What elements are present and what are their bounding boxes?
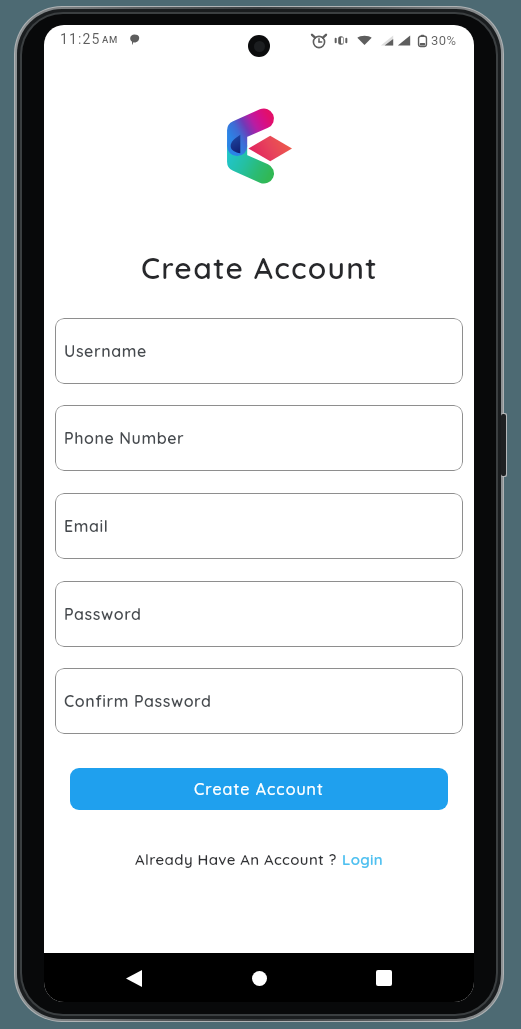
staticText: Phone Number	[64, 428, 185, 448]
button[interactable]: Password	[55, 581, 463, 647]
staticText: Already Have An Account ?	[135, 850, 342, 869]
button[interactable]: Recent apps	[364, 958, 404, 998]
staticText: Email	[64, 516, 109, 536]
staticText: AM	[102, 34, 118, 45]
staticText: 30%	[431, 33, 457, 48]
staticText: Login	[342, 850, 384, 869]
staticText: 11:25	[60, 31, 101, 47]
staticText: Create Account	[194, 779, 324, 799]
button[interactable]: Phone Number	[55, 405, 463, 471]
staticText: Confirm Password	[64, 691, 212, 711]
staticText: Password	[64, 604, 142, 624]
button[interactable]: Login	[342, 850, 384, 869]
staticText: Username	[64, 341, 147, 361]
button[interactable]: Home	[239, 958, 279, 998]
button[interactable]: Back	[114, 958, 154, 998]
button[interactable]: Create Account	[70, 768, 448, 810]
button[interactable]: Email	[55, 493, 463, 559]
button[interactable]: Username	[55, 318, 463, 384]
button[interactable]: Confirm Password	[55, 668, 463, 734]
staticText: Create Account	[141, 249, 378, 287]
